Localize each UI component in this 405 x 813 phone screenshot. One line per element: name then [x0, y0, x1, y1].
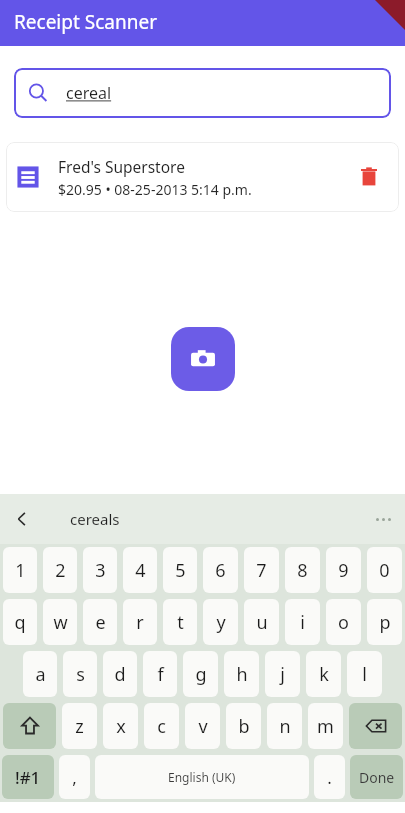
staticText: !#1: [15, 766, 41, 789]
staticText: a: [35, 662, 46, 687]
staticText: u: [256, 610, 268, 635]
staticText: l: [362, 662, 367, 687]
staticText: English (UK): [168, 769, 236, 785]
button[interactable]: y: [203, 599, 238, 645]
button[interactable]: i: [285, 599, 320, 645]
staticText: 0: [379, 558, 390, 583]
button[interactable]: 5: [163, 547, 197, 593]
staticText: s: [76, 662, 85, 687]
button[interactable]: 2: [43, 547, 77, 593]
button[interactable]: o: [326, 599, 361, 645]
button[interactable]: !#1: [2, 755, 54, 799]
staticText: 8: [297, 558, 308, 583]
button[interactable]: s: [63, 651, 97, 697]
button[interactable]: v: [185, 703, 220, 749]
button[interactable]: t: [163, 599, 197, 645]
staticText: 4: [135, 558, 146, 583]
button[interactable]: Search: [14, 68, 391, 118]
button[interactable]: Shift: [3, 703, 56, 749]
staticText: 6: [215, 558, 226, 583]
staticText: x: [116, 714, 126, 739]
staticText: 9: [338, 558, 349, 583]
staticText: Done: [359, 768, 395, 787]
staticText: i: [300, 610, 305, 635]
staticText: m: [317, 714, 334, 739]
button[interactable]: Delete receipt: [349, 157, 389, 197]
button[interactable]: j: [265, 651, 300, 697]
staticText: d: [114, 662, 126, 687]
staticText: cereal: [66, 82, 112, 104]
button[interactable]: r: [123, 599, 157, 645]
staticText: n: [279, 714, 291, 739]
button[interactable]: e: [83, 599, 117, 645]
button[interactable]: m: [308, 703, 343, 749]
button[interactable]: d: [103, 651, 137, 697]
button[interactable]: x: [103, 703, 138, 749]
button[interactable]: More options: [361, 494, 405, 544]
button[interactable]: cereals: [70, 509, 120, 529]
staticText: .: [327, 766, 332, 789]
button[interactable]: b: [226, 703, 261, 749]
staticText: k: [319, 662, 329, 687]
button[interactable]: 4: [123, 547, 157, 593]
staticText: Fred's Superstore: [58, 156, 185, 177]
button[interactable]: Previous suggestions: [0, 494, 44, 544]
staticText: o: [338, 610, 349, 635]
staticText: f: [157, 662, 164, 687]
button[interactable]: 6: [203, 547, 238, 593]
staticText: 2: [55, 558, 66, 583]
button[interactable]: f: [143, 651, 177, 697]
staticText: c: [157, 714, 166, 739]
staticText: 5: [175, 558, 186, 583]
button[interactable]: c: [144, 703, 179, 749]
staticText: v: [198, 714, 208, 739]
staticText: b: [238, 714, 250, 739]
other: Search: [28, 83, 48, 103]
staticText: Receipt Scanner: [14, 9, 158, 35]
staticText: t: [177, 610, 184, 635]
staticText: 1: [15, 558, 26, 583]
staticText: e: [95, 610, 106, 635]
button[interactable]: q: [3, 599, 37, 645]
button[interactable]: g: [183, 651, 218, 697]
button[interactable]: 9: [326, 547, 361, 593]
button[interactable]: w: [43, 599, 77, 645]
button[interactable]: Fred's Superstore: [6, 142, 399, 212]
staticText: z: [75, 714, 84, 739]
button[interactable]: Backspace: [349, 703, 402, 749]
button[interactable]: l: [347, 651, 382, 697]
button[interactable]: 0: [367, 547, 402, 593]
button[interactable]: n: [267, 703, 302, 749]
button[interactable]: h: [224, 651, 259, 697]
staticText: j: [280, 662, 285, 687]
staticText: $20.95 • 08-25-2013 5:14 p.m.: [58, 180, 252, 199]
staticText: 3: [95, 558, 106, 583]
button[interactable]: p: [367, 599, 402, 645]
button[interactable]: z: [62, 703, 97, 749]
button[interactable]: Done: [350, 755, 403, 799]
button[interactable]: English (UK): [95, 755, 309, 799]
staticText: y: [216, 610, 226, 635]
button[interactable]: 1: [3, 547, 37, 593]
staticText: 7: [256, 558, 267, 583]
button[interactable]: 7: [244, 547, 279, 593]
staticText: r: [136, 610, 144, 635]
staticText: h: [236, 662, 248, 687]
staticText: w: [53, 610, 68, 635]
button[interactable]: ,: [59, 755, 90, 799]
button[interactable]: a: [23, 651, 57, 697]
staticText: p: [379, 610, 391, 635]
button[interactable]: k: [306, 651, 341, 697]
button[interactable]: u: [244, 599, 279, 645]
button[interactable]: 8: [285, 547, 320, 593]
button[interactable]: 3: [83, 547, 117, 593]
button[interactable]: Scan receipt with camera: [171, 327, 235, 391]
staticText: ,: [72, 766, 77, 789]
button[interactable]: .: [314, 755, 345, 799]
staticText: q: [14, 610, 26, 635]
staticText: g: [195, 662, 207, 687]
